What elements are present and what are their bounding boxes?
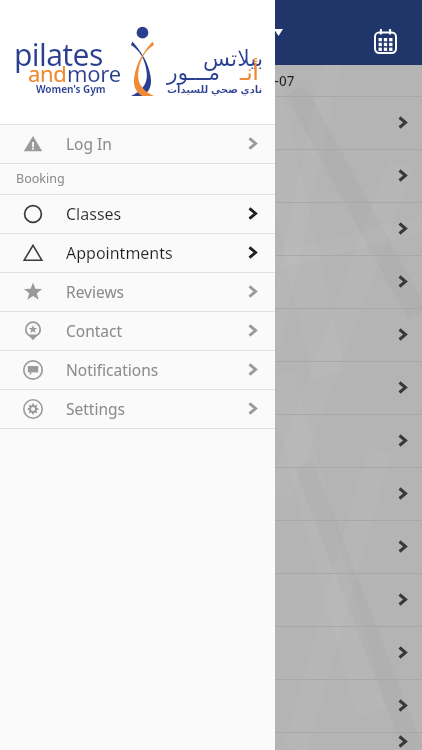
button[interactable]: Settings	[0, 389, 275, 428]
button[interactable]	[0, 255, 422, 308]
button[interactable]: Reviews	[0, 272, 275, 311]
button[interactable]: Contact	[0, 311, 275, 350]
staticText: Appointments	[66, 242, 173, 264]
button[interactable]	[0, 679, 422, 732]
staticText: and	[28, 58, 67, 88]
staticText: أنـ	[240, 60, 259, 86]
button[interactable]	[0, 414, 422, 467]
button[interactable]: Classes	[0, 194, 275, 233]
staticText: more	[67, 58, 121, 88]
staticText: نادي صحي للسيدات	[167, 82, 263, 96]
button[interactable]	[0, 96, 422, 149]
button[interactable]	[0, 626, 422, 679]
staticText: Settings	[66, 398, 125, 419]
button[interactable]	[0, 361, 422, 414]
staticText: Log In	[66, 133, 112, 154]
button[interactable]	[0, 573, 422, 626]
staticText: Booking	[16, 170, 65, 187]
button[interactable]: Notifications	[0, 350, 275, 389]
staticText: مـــور	[167, 60, 221, 86]
staticText: Contact	[66, 320, 123, 341]
button[interactable]	[0, 202, 422, 255]
staticText: Classes	[56, 20, 123, 46]
button[interactable]: Calendar	[366, 22, 406, 62]
button[interactable]: Log In	[0, 124, 275, 163]
button[interactable]	[0, 732, 422, 750]
staticText: Classes	[66, 203, 122, 225]
staticText: Notifications	[66, 359, 159, 380]
button[interactable]	[0, 520, 422, 573]
button[interactable]: Appointments	[0, 233, 275, 272]
staticText: بيلاتس	[203, 46, 264, 72]
staticText: Women's Gym	[36, 82, 106, 96]
button[interactable]	[0, 308, 422, 361]
button[interactable]	[0, 149, 422, 202]
staticText: Saturday 2017-01-07	[163, 72, 295, 90]
staticText: Reviews	[66, 281, 124, 302]
button[interactable]	[0, 467, 422, 520]
staticText: pilates	[14, 34, 103, 75]
